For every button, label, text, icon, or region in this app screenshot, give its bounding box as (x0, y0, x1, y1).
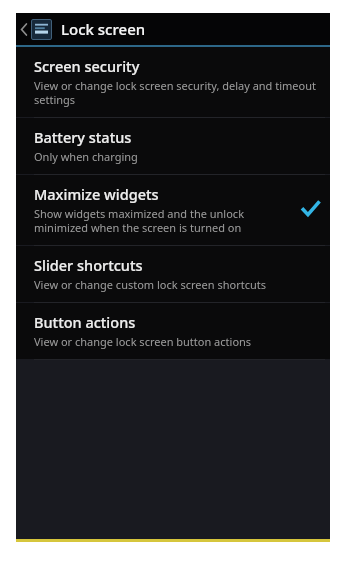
button[interactable]: Slider shortcuts (16, 246, 330, 302)
staticText: View or change lock screen security, del… (34, 78, 323, 107)
button[interactable]: Battery status (16, 118, 330, 174)
staticText: Show widgets maximized and the unlock mi… (34, 206, 294, 235)
staticText: Maximize widgets (34, 184, 159, 204)
button[interactable]: Back (16, 13, 31, 45)
button[interactable]: Maximize widgets checkbox (300, 199, 320, 219)
staticText: View or change custom lock screen shortc… (34, 277, 266, 292)
button[interactable]: Button actions (16, 303, 330, 359)
staticText: Button actions (34, 312, 136, 332)
staticText: Slider shortcuts (34, 255, 143, 275)
staticText: Screen security (34, 56, 140, 76)
staticText: Lock screen (61, 19, 146, 39)
staticText: Battery status (34, 127, 132, 147)
button[interactable]: Maximize widgets (16, 175, 330, 245)
button[interactable]: Screen security (16, 47, 330, 117)
staticText: Only when charging (34, 149, 138, 164)
staticText: View or change lock screen button action… (34, 334, 252, 349)
